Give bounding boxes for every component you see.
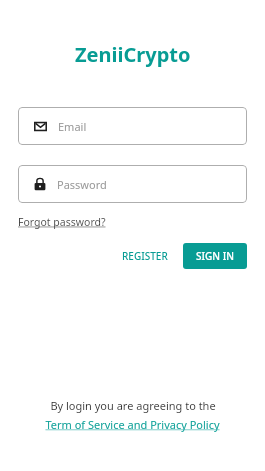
staticText: Forgot password? (18, 215, 106, 229)
button[interactable]: Term of Service and Privacy Policy (45, 417, 220, 432)
staticText: ZeniiCrypto (75, 41, 191, 68)
staticText: REGISTER (122, 249, 168, 263)
staticText: Email (58, 119, 87, 134)
button[interactable]: SIGN IN (183, 243, 247, 269)
staticText: By login you are agreeing to the (50, 398, 216, 413)
button[interactable]: Email (18, 107, 247, 145)
staticText: SIGN IN (196, 249, 234, 263)
button[interactable]: Password (18, 165, 247, 203)
button[interactable]: Forgot password? (18, 215, 106, 229)
button[interactable]: REGISTER (116, 244, 174, 268)
staticText: Password (57, 177, 107, 192)
staticText: Term of Service and Privacy Policy (45, 417, 220, 432)
